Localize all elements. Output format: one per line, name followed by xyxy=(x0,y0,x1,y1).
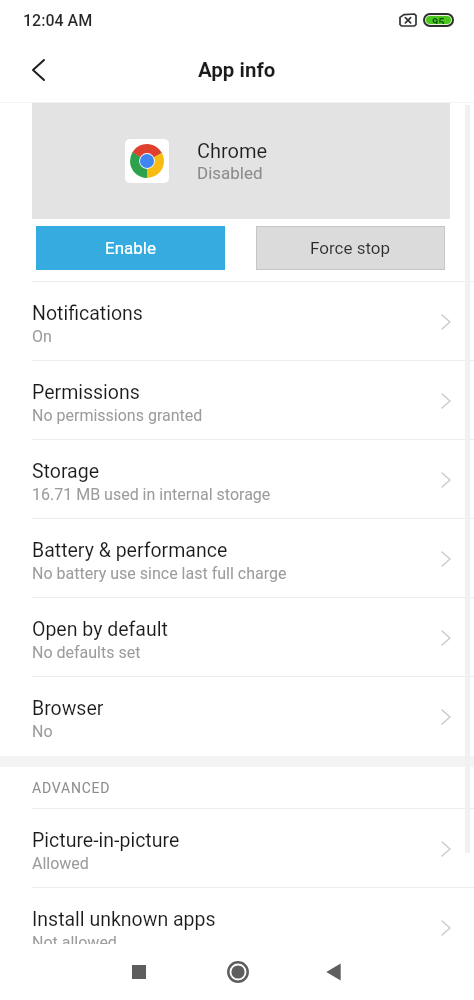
staticText: No permissions granted xyxy=(32,406,203,425)
staticText: 16.71 MB used in internal storage xyxy=(32,485,271,504)
staticText: No defaults set xyxy=(32,643,141,662)
staticText: App info xyxy=(198,58,276,82)
button[interactable]: Notifications xyxy=(0,282,474,361)
staticText: Permissions xyxy=(32,381,140,404)
staticText: Chrome xyxy=(197,139,268,162)
staticText: No battery use since last full charge xyxy=(32,564,287,583)
staticText: Install unknown apps xyxy=(32,908,216,931)
button[interactable]: Storage xyxy=(0,440,474,519)
button[interactable]: Install unknown apps xyxy=(0,888,474,944)
button[interactable]: Open by default xyxy=(0,598,474,677)
button[interactable]: Enable xyxy=(36,226,225,270)
staticText: Not allowed xyxy=(32,933,117,944)
staticText: No xyxy=(32,722,53,741)
staticText: ADVANCED xyxy=(32,780,111,796)
staticText: 12:04 AM xyxy=(23,11,93,30)
staticText: Battery & performance xyxy=(32,539,228,562)
button[interactable]: Permissions xyxy=(0,361,474,440)
button[interactable]: Battery & performance xyxy=(0,519,474,598)
staticText: Browser xyxy=(32,697,104,720)
staticText: Notifications xyxy=(32,302,143,325)
staticText: Storage xyxy=(32,460,100,483)
button[interactable]: Navigate up xyxy=(10,42,66,98)
button[interactable]: Recent apps xyxy=(108,944,170,1000)
button[interactable]: Home xyxy=(207,944,269,1000)
staticText: On xyxy=(32,327,52,346)
staticText: Force stop xyxy=(310,238,391,258)
staticText: Enable xyxy=(105,238,156,258)
staticText: Disabled xyxy=(197,163,263,183)
button[interactable]: Force stop xyxy=(256,226,445,270)
button[interactable]: Browser xyxy=(0,677,474,756)
button[interactable]: Back xyxy=(302,944,364,1000)
staticText: Picture-in-picture xyxy=(32,829,180,852)
staticText: Open by default xyxy=(32,618,168,641)
staticText: 95 xyxy=(432,16,445,24)
button[interactable]: Picture-in-picture xyxy=(0,809,474,888)
staticText: Allowed xyxy=(32,854,89,873)
